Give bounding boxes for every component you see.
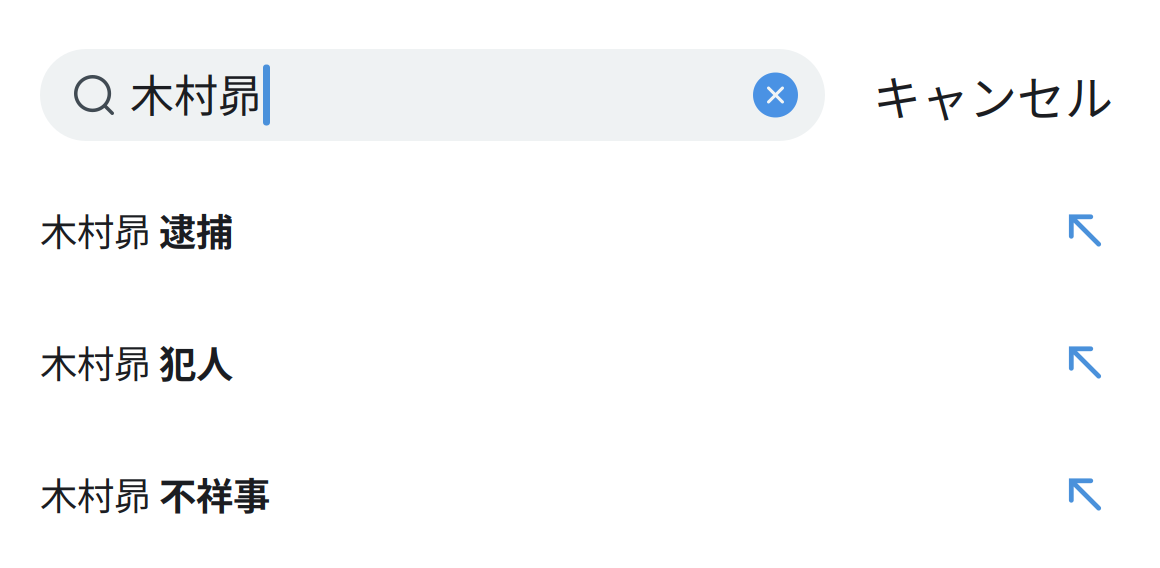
button[interactable]: Clear search text bbox=[753, 72, 798, 117]
staticText: 不祥事 bbox=[159, 467, 270, 521]
staticText: キャンセル bbox=[873, 60, 1113, 130]
staticText: 木村昴 bbox=[130, 61, 262, 125]
staticText: 逮捕 bbox=[159, 203, 233, 257]
button[interactable]: 木村昴 bbox=[0, 428, 1160, 560]
staticText: 犯人 bbox=[159, 335, 233, 389]
staticText: 木村昴 bbox=[40, 335, 151, 389]
button[interactable]: キャンセル bbox=[851, 49, 1135, 141]
staticText: 木村昴 bbox=[40, 467, 151, 521]
button[interactable]: 木村昴 bbox=[0, 296, 1160, 428]
staticText: 木村昴 bbox=[40, 203, 151, 257]
button[interactable]: 木村昴 bbox=[0, 164, 1160, 296]
